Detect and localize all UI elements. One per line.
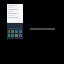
button[interactable]: Chart [7, 4, 23, 39]
button[interactable]: Chart [7, 23, 23, 39]
